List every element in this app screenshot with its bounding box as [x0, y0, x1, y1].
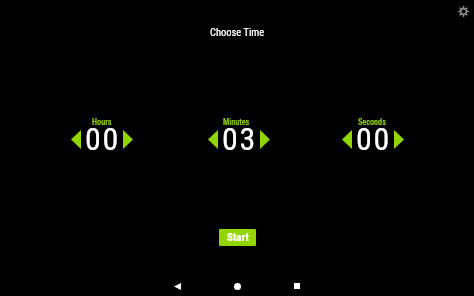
staticText: 03 — [222, 120, 257, 158]
staticText: Hours — [92, 117, 112, 127]
staticText: Seconds — [358, 117, 386, 127]
button[interactable]: Back — [157, 276, 197, 296]
button[interactable]: Decrease Hours — [66, 126, 85, 152]
button[interactable]: Increase Minutes — [255, 126, 274, 152]
button[interactable]: Settings — [452, 0, 474, 22]
button[interactable]: Increase Hours — [118, 126, 137, 152]
button[interactable]: Increase Seconds — [389, 126, 408, 152]
button[interactable]: Start — [219, 229, 256, 246]
staticText: Choose Time — [210, 26, 265, 38]
button[interactable]: Recent apps — [277, 276, 317, 296]
button[interactable]: Home — [217, 276, 257, 296]
staticText: Start — [227, 231, 249, 244]
staticText: 00 — [85, 120, 120, 158]
staticText: 00 — [356, 120, 391, 158]
staticText: Minutes — [223, 117, 250, 127]
button[interactable]: Decrease Minutes — [203, 126, 222, 152]
button[interactable]: Decrease Seconds — [337, 126, 356, 152]
